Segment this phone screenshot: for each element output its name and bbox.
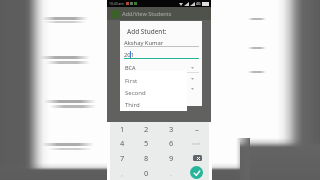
button[interactable]: 9 [159, 150, 184, 165]
button[interactable]: – [184, 122, 209, 136]
button[interactable]: 1 [110, 122, 134, 136]
staticText: 6 [169, 138, 174, 148]
staticText: 9 [169, 153, 174, 163]
staticText: Add Student: [127, 27, 167, 36]
button[interactable]: 5 [134, 136, 159, 150]
button[interactable]: Done [184, 165, 209, 180]
button[interactable]: next [184, 136, 209, 150]
staticText: First [125, 77, 138, 85]
button[interactable]: 0 [134, 165, 159, 180]
button[interactable]: 7 [110, 150, 134, 165]
button[interactable]: 4 [110, 136, 134, 150]
other: Done [190, 166, 203, 179]
button[interactable]: Add/View Students [107, 7, 211, 21]
staticText: 3 [169, 124, 174, 134]
staticText: 4 [120, 138, 125, 148]
button[interactable]: 8 [134, 150, 159, 165]
staticText: – [195, 124, 199, 134]
button[interactable]: 3 [159, 122, 184, 136]
button[interactable]: Backspace [184, 150, 209, 165]
staticText: . [170, 168, 173, 178]
staticText: Second [125, 89, 146, 97]
staticText: 1 [120, 124, 125, 134]
staticText: 10:43 am [109, 1, 124, 6]
staticText: 5 [144, 138, 149, 148]
staticText: BCA [125, 64, 136, 71]
button[interactable]: 6 [159, 136, 184, 150]
staticText: Akshay Kumar [124, 39, 164, 47]
staticText: Third [125, 101, 140, 109]
staticText: 7 [120, 153, 125, 163]
staticText: next [192, 141, 201, 146]
staticText: 201 [124, 51, 134, 59]
button[interactable]: 2 [134, 122, 159, 136]
other: Backspace [193, 155, 202, 161]
staticText: , [121, 168, 124, 178]
staticText: 2 [144, 124, 149, 134]
staticText: 0 [144, 168, 149, 178]
staticText: Add/View Students [122, 10, 172, 18]
staticText: 4G [196, 1, 201, 6]
staticText: 8 [144, 153, 149, 163]
